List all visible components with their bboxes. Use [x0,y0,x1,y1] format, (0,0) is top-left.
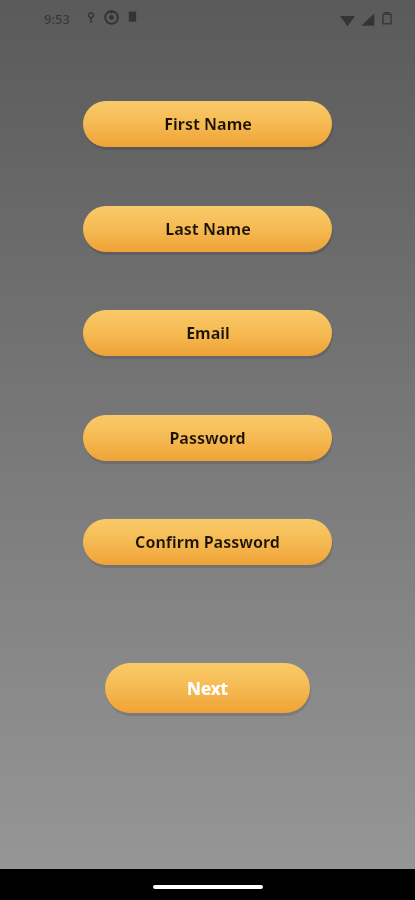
button[interactable]: Password [83,415,332,461]
staticText: Last Name [165,218,251,240]
button[interactable]: Home gesture handle [153,885,263,889]
staticText: 9:53 [44,10,70,28]
button[interactable]: Confirm Password [83,519,332,565]
staticText: Password [169,427,246,449]
staticText: Next [187,677,228,700]
button[interactable]: Next [105,663,310,713]
button[interactable]: Last Name [83,206,332,252]
button[interactable]: First Name [83,101,332,147]
staticText: Email [186,322,230,344]
staticText: First Name [164,113,252,135]
button[interactable]: Email [83,310,332,356]
staticText: Confirm Password [135,531,280,553]
